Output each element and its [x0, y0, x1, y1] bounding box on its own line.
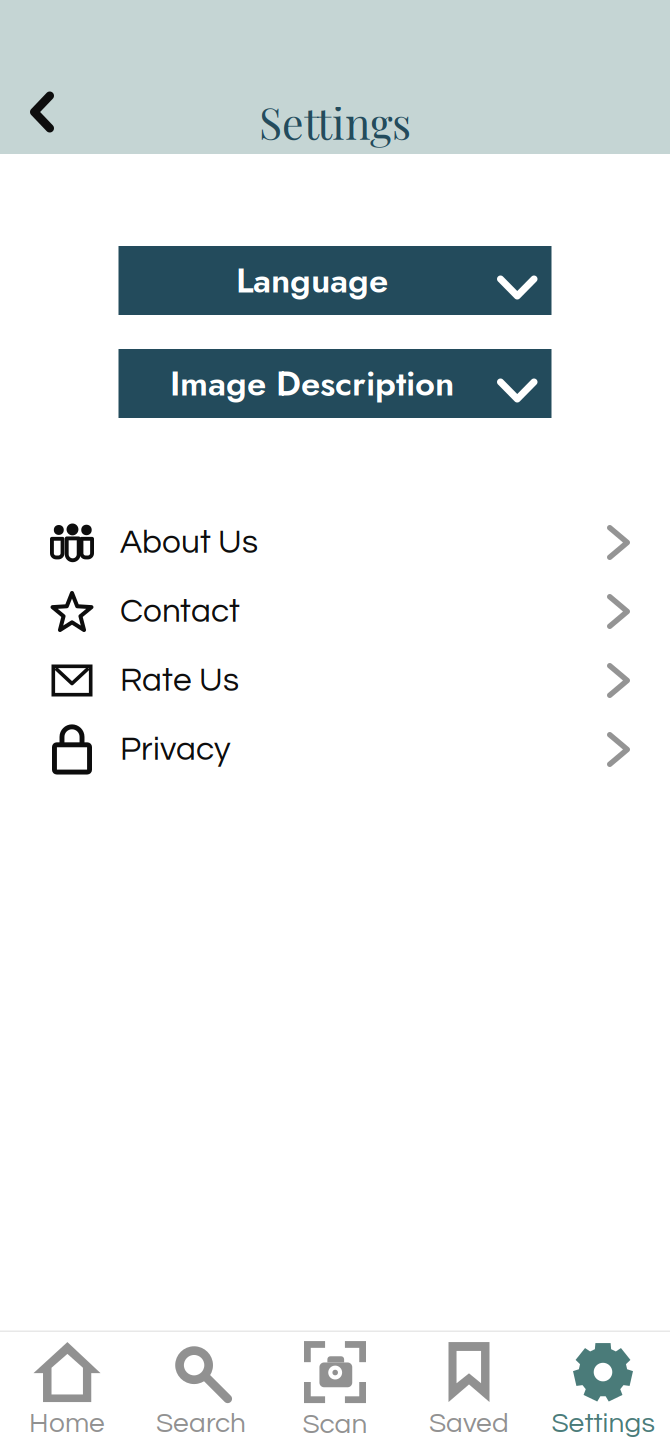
staticText: Saved — [429, 1409, 509, 1438]
button[interactable]: Language — [118, 246, 551, 315]
button[interactable]: Back — [9, 79, 75, 145]
button[interactable]: Contact — [0, 577, 670, 646]
staticText: Settings — [551, 1409, 654, 1438]
button[interactable]: Privacy — [0, 715, 670, 784]
button[interactable]: Settings — [536, 1332, 670, 1448]
button[interactable]: Saved — [402, 1332, 536, 1448]
staticText: Settings — [259, 94, 411, 150]
staticText: Privacy — [120, 732, 231, 767]
staticText: Search — [156, 1409, 246, 1438]
staticText: Rate Us — [120, 663, 239, 698]
button[interactable]: Image Description — [118, 349, 551, 418]
staticText: Language — [236, 255, 388, 306]
staticText: Home — [29, 1409, 105, 1438]
staticText: About Us — [120, 525, 258, 560]
button[interactable]: About Us — [0, 508, 670, 577]
button[interactable]: Scan — [268, 1332, 402, 1448]
staticText: Image Description — [170, 358, 454, 409]
staticText: Scan — [302, 1410, 367, 1439]
button[interactable]: Rate Us — [0, 646, 670, 715]
button[interactable]: Search — [134, 1332, 268, 1448]
button[interactable]: Home — [0, 1332, 134, 1448]
staticText: Contact — [120, 594, 240, 629]
